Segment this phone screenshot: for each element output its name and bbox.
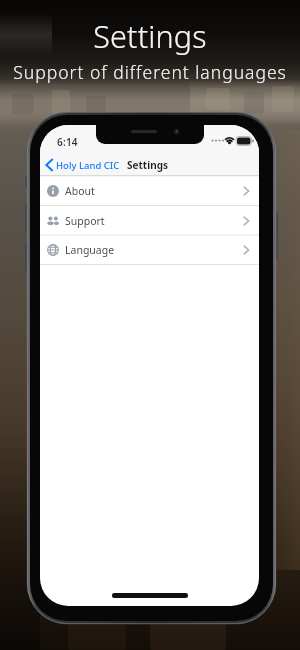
button[interactable]: About	[40, 176, 259, 206]
staticText: Settings	[0, 15, 300, 57]
button[interactable]: Holy Land CIC	[44, 158, 120, 172]
staticText: Settings	[127, 158, 168, 172]
button[interactable]: Language	[40, 235, 259, 265]
staticText: Language	[65, 243, 115, 257]
staticText: Support	[65, 214, 105, 228]
staticText: Support of different languages	[0, 60, 300, 84]
staticText: 6:14	[57, 135, 78, 149]
button[interactable]: Support	[40, 206, 259, 236]
staticText: About	[65, 184, 95, 198]
staticText: Holy Land CIC	[56, 159, 120, 172]
